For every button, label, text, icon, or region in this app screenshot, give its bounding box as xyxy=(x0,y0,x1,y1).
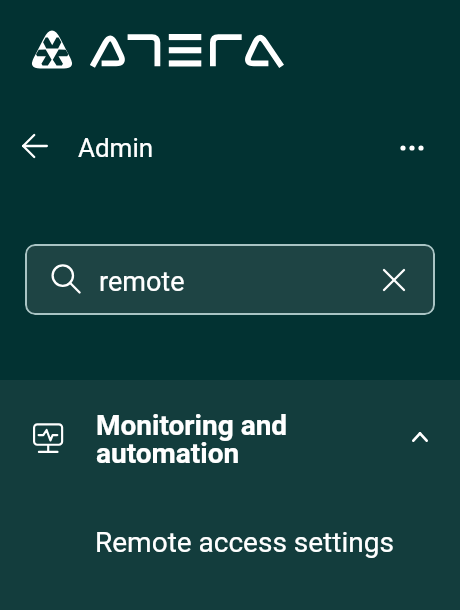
button[interactable]: Monitoring and automation xyxy=(0,380,460,493)
staticText: Monitoring and automation xyxy=(96,409,288,470)
button[interactable]: remote xyxy=(25,244,435,315)
button[interactable]: Back xyxy=(8,119,62,173)
button[interactable]: Collapse section xyxy=(394,411,446,463)
staticText: Admin xyxy=(78,133,154,163)
staticText: remote xyxy=(99,266,185,298)
button[interactable]: Remote access settings xyxy=(0,493,460,583)
staticText: Remote access settings xyxy=(95,526,394,559)
button[interactable]: More options xyxy=(385,121,439,175)
button[interactable]: Clear search xyxy=(370,256,418,304)
